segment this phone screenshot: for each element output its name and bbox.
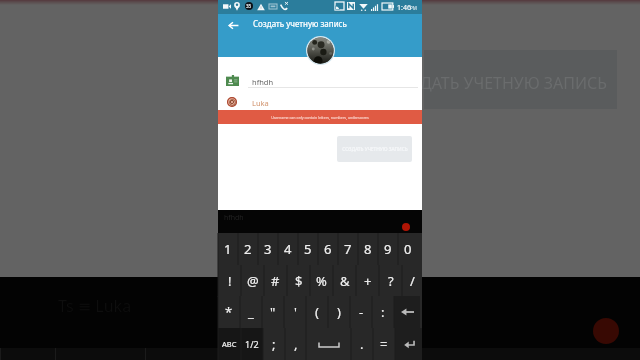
staticText: = — [380, 335, 388, 353]
staticText: ДАТЬ УЧЕТНУЮ ЗАПИСЬ — [420, 72, 608, 94]
button[interactable]: ; — [263, 328, 285, 360]
staticText: + — [364, 272, 372, 290]
button[interactable]: ' — [284, 296, 306, 328]
button[interactable]: 3 — [258, 233, 278, 265]
staticText: ABC — [222, 339, 237, 349]
button[interactable]: 1 — [218, 233, 238, 265]
other: Enter — [403, 339, 415, 349]
staticText: Luka — [252, 98, 269, 108]
staticText: PM — [410, 5, 417, 11]
button[interactable]: Enter — [395, 328, 422, 360]
staticText: $ — [295, 272, 303, 290]
button[interactable]: Profile photo — [306, 36, 335, 65]
button[interactable]: / — [402, 265, 422, 297]
button[interactable]: ( — [306, 296, 328, 328]
button[interactable]: . — [351, 328, 373, 360]
button[interactable]: Back — [222, 14, 244, 36]
button[interactable]: " — [262, 296, 284, 328]
staticText: ( — [315, 303, 319, 321]
staticText: 2 — [244, 240, 252, 258]
staticText: ? — [388, 272, 394, 290]
staticText: 9 — [384, 240, 392, 258]
staticText: 1/2 — [245, 338, 259, 350]
button[interactable]: 1/2 — [241, 328, 263, 360]
button[interactable]: Backspace — [394, 296, 420, 328]
staticText: & — [340, 272, 350, 290]
button[interactable]: 2 — [238, 233, 258, 265]
staticText: 3 — [264, 240, 272, 258]
staticText: 6 — [324, 240, 332, 258]
button[interactable]: 4 — [278, 233, 298, 265]
button[interactable]: + — [356, 265, 379, 297]
button[interactable]: 7 — [338, 233, 358, 265]
staticText: Username can only contain letters, numbe… — [271, 115, 369, 120]
button[interactable]: ABC — [218, 328, 241, 360]
staticText: 7 — [344, 240, 352, 258]
staticText: ' — [294, 303, 297, 321]
button[interactable]: * — [218, 296, 240, 328]
other: Space — [319, 341, 339, 348]
staticText: " — [270, 303, 276, 321]
staticText: , — [294, 335, 298, 353]
button[interactable]: ! — [218, 265, 241, 297]
button[interactable]: , — [285, 328, 306, 360]
button[interactable]: Space — [306, 328, 351, 360]
button[interactable]: & — [333, 265, 356, 297]
button[interactable]: - — [350, 296, 372, 328]
staticText: 35 — [246, 3, 252, 9]
button[interactable]: # — [264, 265, 287, 297]
staticText: # — [271, 272, 280, 290]
staticText: 5 — [304, 240, 312, 258]
button[interactable]: ) — [328, 296, 350, 328]
button[interactable]: 6 — [318, 233, 338, 265]
button[interactable]: СОЗДАТЬ УЧЕТНУЮ ЗАПИСЬ — [337, 136, 412, 162]
staticText: СОЗДАТЬ УЧЕТНУЮ ЗАПИСЬ — [342, 146, 408, 153]
staticText: ; — [272, 335, 276, 353]
staticText: % — [316, 272, 327, 290]
button[interactable]: $ — [287, 265, 310, 297]
staticText: _ — [248, 303, 254, 321]
button[interactable]: % — [310, 265, 333, 297]
button[interactable]: : — [372, 296, 394, 328]
staticText: 0 — [404, 240, 412, 258]
staticText: ! — [228, 272, 232, 290]
staticText: 1 — [224, 240, 232, 258]
staticText: hfhdh — [224, 213, 244, 223]
button[interactable]: 9 — [378, 233, 398, 265]
staticText: . — [360, 335, 364, 353]
staticText: 8 — [364, 240, 372, 258]
other: Backspace — [401, 307, 414, 317]
button[interactable]: @ — [241, 265, 264, 297]
staticText: 1:46 — [397, 3, 411, 13]
staticText: 4 — [284, 240, 292, 258]
staticText: Создать учетную запись — [253, 18, 347, 29]
button[interactable]: 5 — [298, 233, 318, 265]
staticText: hfhdh — [252, 77, 274, 87]
button[interactable]: 0 — [398, 233, 418, 265]
button[interactable]: = — [373, 328, 395, 360]
staticText: / — [410, 272, 415, 290]
button[interactable]: 8 — [358, 233, 378, 265]
staticText: @ — [247, 272, 259, 290]
staticText: * — [225, 303, 233, 321]
staticText: - — [359, 303, 364, 321]
staticText: ) — [337, 303, 341, 321]
staticText: : — [381, 303, 385, 321]
button[interactable]: _ — [240, 296, 262, 328]
button[interactable]: ? — [379, 265, 402, 297]
